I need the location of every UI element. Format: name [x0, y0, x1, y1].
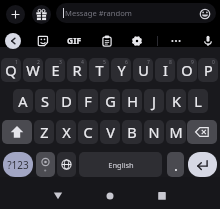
staticText: 4	[81, 59, 84, 66]
button[interactable]: O	[177, 58, 197, 82]
button[interactable]: I	[155, 58, 175, 82]
staticText: 1	[15, 59, 18, 66]
button[interactable]: G	[100, 89, 120, 113]
button[interactable]: N	[144, 120, 164, 144]
button[interactable]: English	[79, 152, 162, 177]
button[interactable]: Backspace	[187, 120, 217, 144]
button[interactable]: Message #random	[56, 3, 216, 23]
button[interactable]: K	[166, 89, 186, 113]
staticText: D	[61, 91, 72, 111]
button[interactable]: M	[166, 120, 186, 144]
button[interactable]: S	[35, 89, 55, 113]
staticText: C	[83, 122, 93, 142]
button[interactable]: Y	[111, 58, 131, 82]
button[interactable]: Shift	[2, 120, 32, 144]
staticText: T	[95, 60, 104, 80]
staticText: X	[62, 122, 71, 142]
staticText: H	[127, 91, 138, 111]
button[interactable]: D	[56, 89, 76, 113]
staticText: Message #random	[65, 8, 132, 18]
staticText: G	[105, 91, 116, 111]
button[interactable]: X	[56, 120, 76, 144]
staticText: GIF	[67, 35, 82, 47]
staticText: .	[174, 155, 178, 175]
staticText: F	[84, 91, 92, 111]
staticText: 2	[37, 59, 40, 66]
button[interactable]: T	[89, 58, 109, 82]
button[interactable]: Back	[48, 186, 68, 206]
button[interactable]: A	[13, 89, 33, 113]
staticText: M	[169, 122, 183, 142]
staticText: 0	[212, 59, 215, 66]
staticText: A	[18, 91, 28, 111]
button[interactable]: Emoji	[36, 152, 55, 177]
button[interactable]: Back	[5, 33, 21, 49]
staticText: P	[204, 60, 213, 80]
staticText: Z	[40, 122, 49, 142]
button[interactable]: B	[122, 120, 142, 144]
button[interactable]: Z	[34, 120, 54, 144]
staticText: R	[72, 60, 82, 80]
staticText: 6	[125, 59, 128, 66]
button[interactable]: L	[188, 89, 208, 113]
staticText: 7	[147, 59, 150, 66]
button[interactable]: W	[23, 58, 43, 82]
staticText: English	[108, 160, 134, 170]
button[interactable]: E	[45, 58, 65, 82]
staticText: 8	[169, 59, 172, 66]
button[interactable]: Clipboard	[100, 33, 114, 48]
button[interactable]: P	[198, 58, 218, 82]
button[interactable]: Enter	[188, 152, 217, 177]
staticText: L	[194, 91, 202, 111]
staticText: 9	[191, 59, 194, 66]
button[interactable]: .	[167, 152, 184, 177]
button[interactable]: More options	[169, 34, 183, 48]
button[interactable]: Q	[1, 58, 21, 82]
button[interactable]: Emoji	[198, 7, 212, 21]
button[interactable]: Change language	[57, 152, 76, 177]
button[interactable]: F	[78, 89, 98, 113]
button[interactable]: U	[133, 58, 153, 82]
staticText: O	[181, 60, 193, 80]
staticText: Y	[117, 60, 126, 80]
button[interactable]: V	[100, 120, 120, 144]
button[interactable]: H	[122, 89, 142, 113]
button[interactable]: J	[144, 89, 164, 113]
staticText: 3	[59, 59, 62, 66]
button[interactable]: C	[78, 120, 98, 144]
staticText: 5	[103, 59, 106, 66]
button[interactable]: Send a gift	[32, 5, 51, 24]
staticText: N	[148, 122, 160, 142]
button[interactable]: Voice input	[201, 34, 215, 48]
button[interactable]: R	[67, 58, 87, 82]
button[interactable]: Home	[100, 186, 120, 206]
staticText: Q	[5, 60, 17, 80]
button[interactable]: Add attachment	[6, 5, 25, 24]
staticText: K	[172, 91, 181, 111]
button[interactable]: GIF	[65, 33, 84, 48]
staticText: V	[106, 122, 115, 142]
staticText: E	[51, 60, 60, 80]
staticText: W	[26, 60, 40, 80]
button[interactable]: ?123	[3, 152, 33, 177]
staticText: S	[41, 91, 49, 111]
staticText: U	[138, 60, 149, 80]
button[interactable]: Stickers	[36, 34, 50, 48]
staticText: I	[163, 60, 168, 80]
button[interactable]: Recent apps	[152, 186, 172, 206]
staticText: ?123	[7, 158, 29, 172]
button[interactable]: Settings	[130, 34, 144, 48]
staticText: J	[152, 91, 156, 111]
staticText: B	[127, 122, 137, 142]
